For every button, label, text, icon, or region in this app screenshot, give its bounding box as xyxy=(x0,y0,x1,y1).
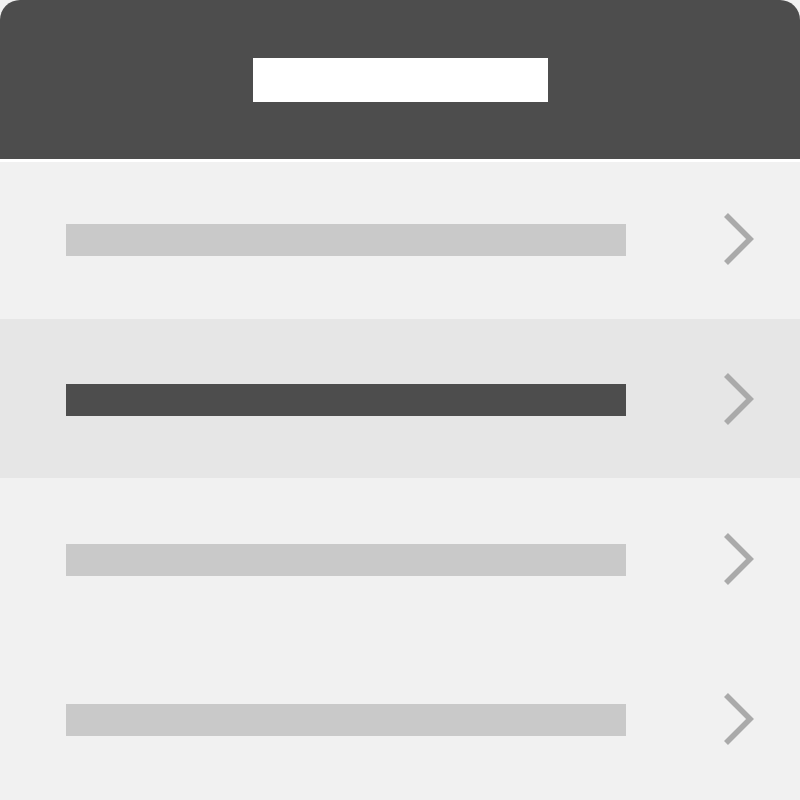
button[interactable]: Open item xyxy=(0,319,800,478)
button[interactable]: Open item xyxy=(0,639,800,799)
button[interactable]: Open item xyxy=(706,520,772,600)
button[interactable]: Open item xyxy=(706,680,772,760)
button[interactable]: Open item xyxy=(706,200,772,280)
button[interactable]: Open item xyxy=(0,478,800,639)
button[interactable]: Open item xyxy=(0,162,800,319)
button[interactable] xyxy=(0,0,800,159)
button[interactable]: Open item xyxy=(706,360,772,440)
